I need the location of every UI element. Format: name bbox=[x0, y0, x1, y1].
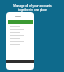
staticText: Manage all of your accounts together in … bbox=[13, 4, 52, 12]
